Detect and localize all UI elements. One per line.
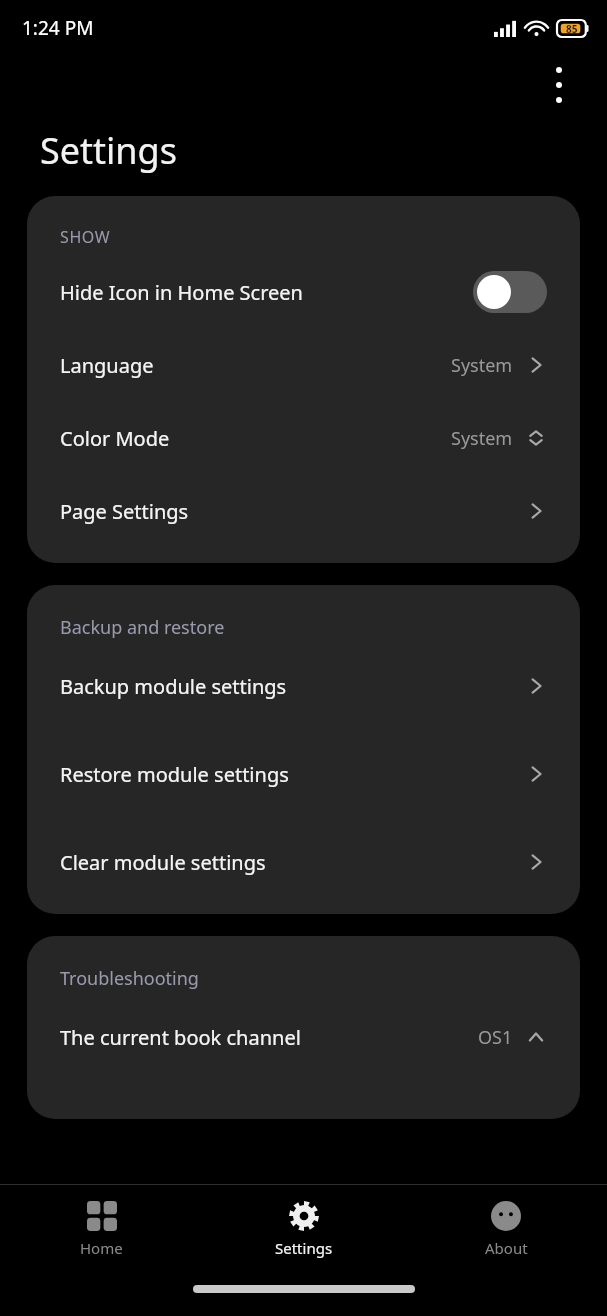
- staticText: System: [451, 353, 513, 378]
- staticText: The current book channel: [60, 1024, 478, 1051]
- staticText: Backup and restore: [60, 615, 225, 640]
- staticText: 85: [566, 22, 578, 36]
- button[interactable]: Home: [0, 1185, 203, 1273]
- button[interactable]: Language: [27, 343, 580, 387]
- staticText: System: [451, 426, 513, 451]
- staticText: Clear module settings: [60, 849, 525, 876]
- staticText: Troubleshooting: [60, 966, 199, 991]
- staticText: Page Settings: [60, 498, 525, 525]
- staticText: Settings: [40, 126, 177, 175]
- button[interactable]: Page Settings: [27, 489, 580, 533]
- button[interactable]: Backup module settings: [27, 664, 580, 708]
- button[interactable]: Restore module settings: [27, 752, 580, 796]
- staticText: Color Mode: [60, 425, 451, 452]
- staticText: Home: [80, 1238, 123, 1258]
- staticText: Backup module settings: [60, 673, 525, 700]
- button[interactable]: The current book channel: [27, 1015, 580, 1059]
- button[interactable]: Clear module settings: [27, 840, 580, 884]
- staticText: Restore module settings: [60, 761, 525, 788]
- staticText: About: [485, 1238, 528, 1258]
- staticText: Hide Icon in Home Screen: [60, 279, 473, 306]
- button[interactable]: Hide Icon in Home Screen: [27, 270, 580, 314]
- staticText: 1:24 PM: [22, 15, 94, 41]
- button[interactable]: More options: [535, 61, 583, 109]
- staticText: Settings: [275, 1238, 333, 1258]
- button[interactable]: Color Mode: [27, 416, 580, 460]
- button[interactable]: About: [405, 1185, 607, 1273]
- staticText: Language: [60, 352, 451, 379]
- button[interactable]: Settings: [203, 1185, 405, 1273]
- staticText: SHOW: [60, 226, 111, 248]
- staticText: OS1: [478, 1025, 513, 1050]
- button[interactable]: Hide Icon in Home Screen toggle: [473, 271, 547, 313]
